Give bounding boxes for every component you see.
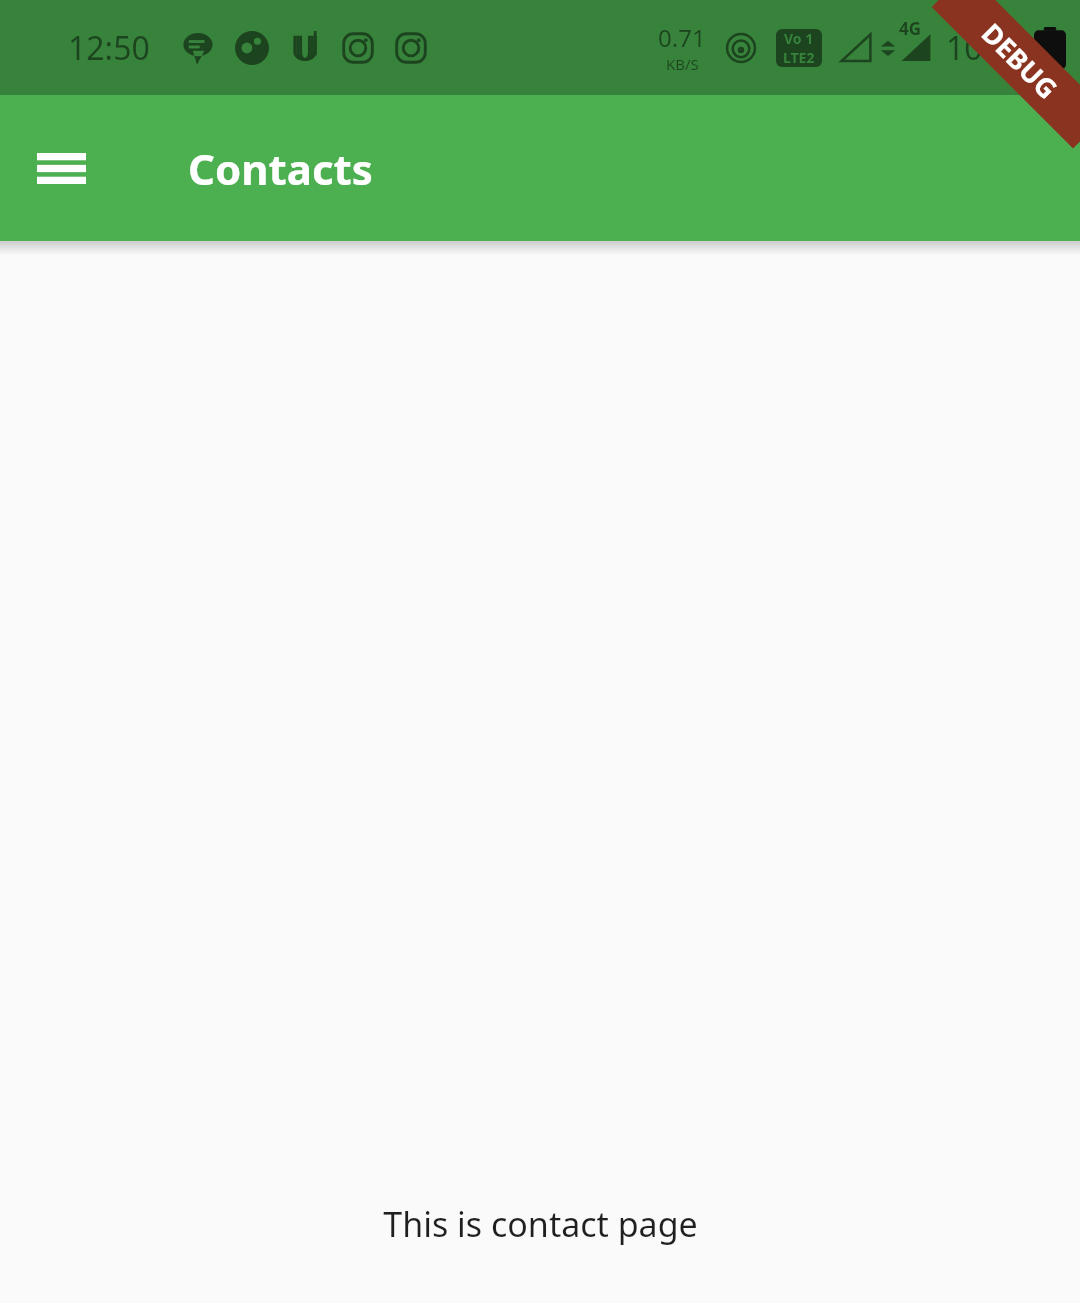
staticText: 100% xyxy=(946,26,1028,70)
staticText: 0.71 xyxy=(658,21,706,54)
button[interactable]: Open navigation menu xyxy=(25,132,97,204)
staticText: Contacts xyxy=(188,140,373,197)
staticText: LTE2 xyxy=(783,48,815,67)
staticText: 4G xyxy=(899,17,922,40)
staticText: This is contact page xyxy=(383,1201,698,1247)
staticText: 12:50 xyxy=(68,26,150,70)
staticText: DEBUG xyxy=(974,15,1066,107)
staticText: KB/S xyxy=(666,54,699,74)
staticText: Vo 1 xyxy=(784,29,814,48)
